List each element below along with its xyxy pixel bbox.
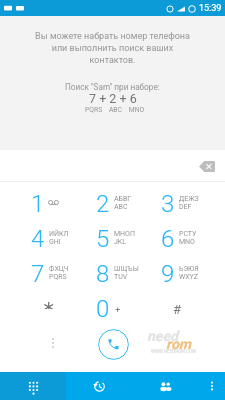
button[interactable]: Dialpad <box>0 372 66 400</box>
staticText: need <box>147 328 178 344</box>
staticText: РСТУ MNO <box>179 230 197 245</box>
staticText: 0 <box>96 295 110 323</box>
button[interactable]: 5 <box>70 221 135 256</box>
staticText: PQRS ABC MNO <box>85 106 145 114</box>
button[interactable]: 6 <box>135 221 200 256</box>
button[interactable]: # <box>135 291 200 326</box>
staticText: АБВГ ABC <box>114 195 132 210</box>
staticText: WWW.NEEDROM.COM <box>151 349 197 354</box>
staticText: МНОП JKL <box>114 230 135 245</box>
button[interactable]: ∗ <box>5 291 70 326</box>
staticText: 3 <box>161 190 175 218</box>
staticText: 5 <box>96 225 110 253</box>
button[interactable]: 2 <box>70 186 135 221</box>
staticText: ∗ <box>42 297 56 309</box>
button[interactable]: Contacts <box>132 372 198 400</box>
button[interactable]: 4 <box>5 221 70 256</box>
staticText: 7 + 2 + 6 <box>89 91 137 106</box>
button[interactable]: Recents <box>66 372 132 400</box>
button[interactable]: More options <box>44 334 62 352</box>
staticText: 2 <box>96 190 110 218</box>
staticText: + <box>115 304 121 312</box>
staticText: rom <box>166 336 191 352</box>
staticText: 7 <box>31 260 45 288</box>
button[interactable]: 3 <box>135 186 200 221</box>
staticText: ИЙКЛ GHI <box>49 230 69 245</box>
button[interactable]: 7 <box>5 256 70 291</box>
staticText: 4 <box>31 225 45 253</box>
staticText: 9 <box>161 260 175 288</box>
button[interactable]: Call <box>98 329 129 360</box>
staticText: 15:39 <box>199 3 222 14</box>
staticText: 1 <box>31 190 45 218</box>
button[interactable]: 0 <box>70 291 135 326</box>
button[interactable]: 9 <box>135 256 200 291</box>
staticText: ДЕЖЗ DEF <box>179 195 199 210</box>
button[interactable]: Backspace <box>196 156 218 176</box>
staticText: ШЩЪЫ TUV <box>114 265 139 280</box>
staticText: Поиск "Sam" при наборе: <box>65 82 160 92</box>
staticText: 6 <box>161 225 175 253</box>
staticText: ФХЦЧ PQRS <box>49 265 69 280</box>
button[interactable]: More options <box>198 372 225 400</box>
staticText: # <box>173 302 182 315</box>
staticText: Вы можете набрать номер телефона или вып… <box>35 31 190 65</box>
button[interactable]: 1 <box>5 186 70 221</box>
staticText: 8 <box>96 260 110 288</box>
button[interactable]: 8 <box>70 256 135 291</box>
staticText: ЬЭЮЯ WXYZ <box>179 265 199 280</box>
